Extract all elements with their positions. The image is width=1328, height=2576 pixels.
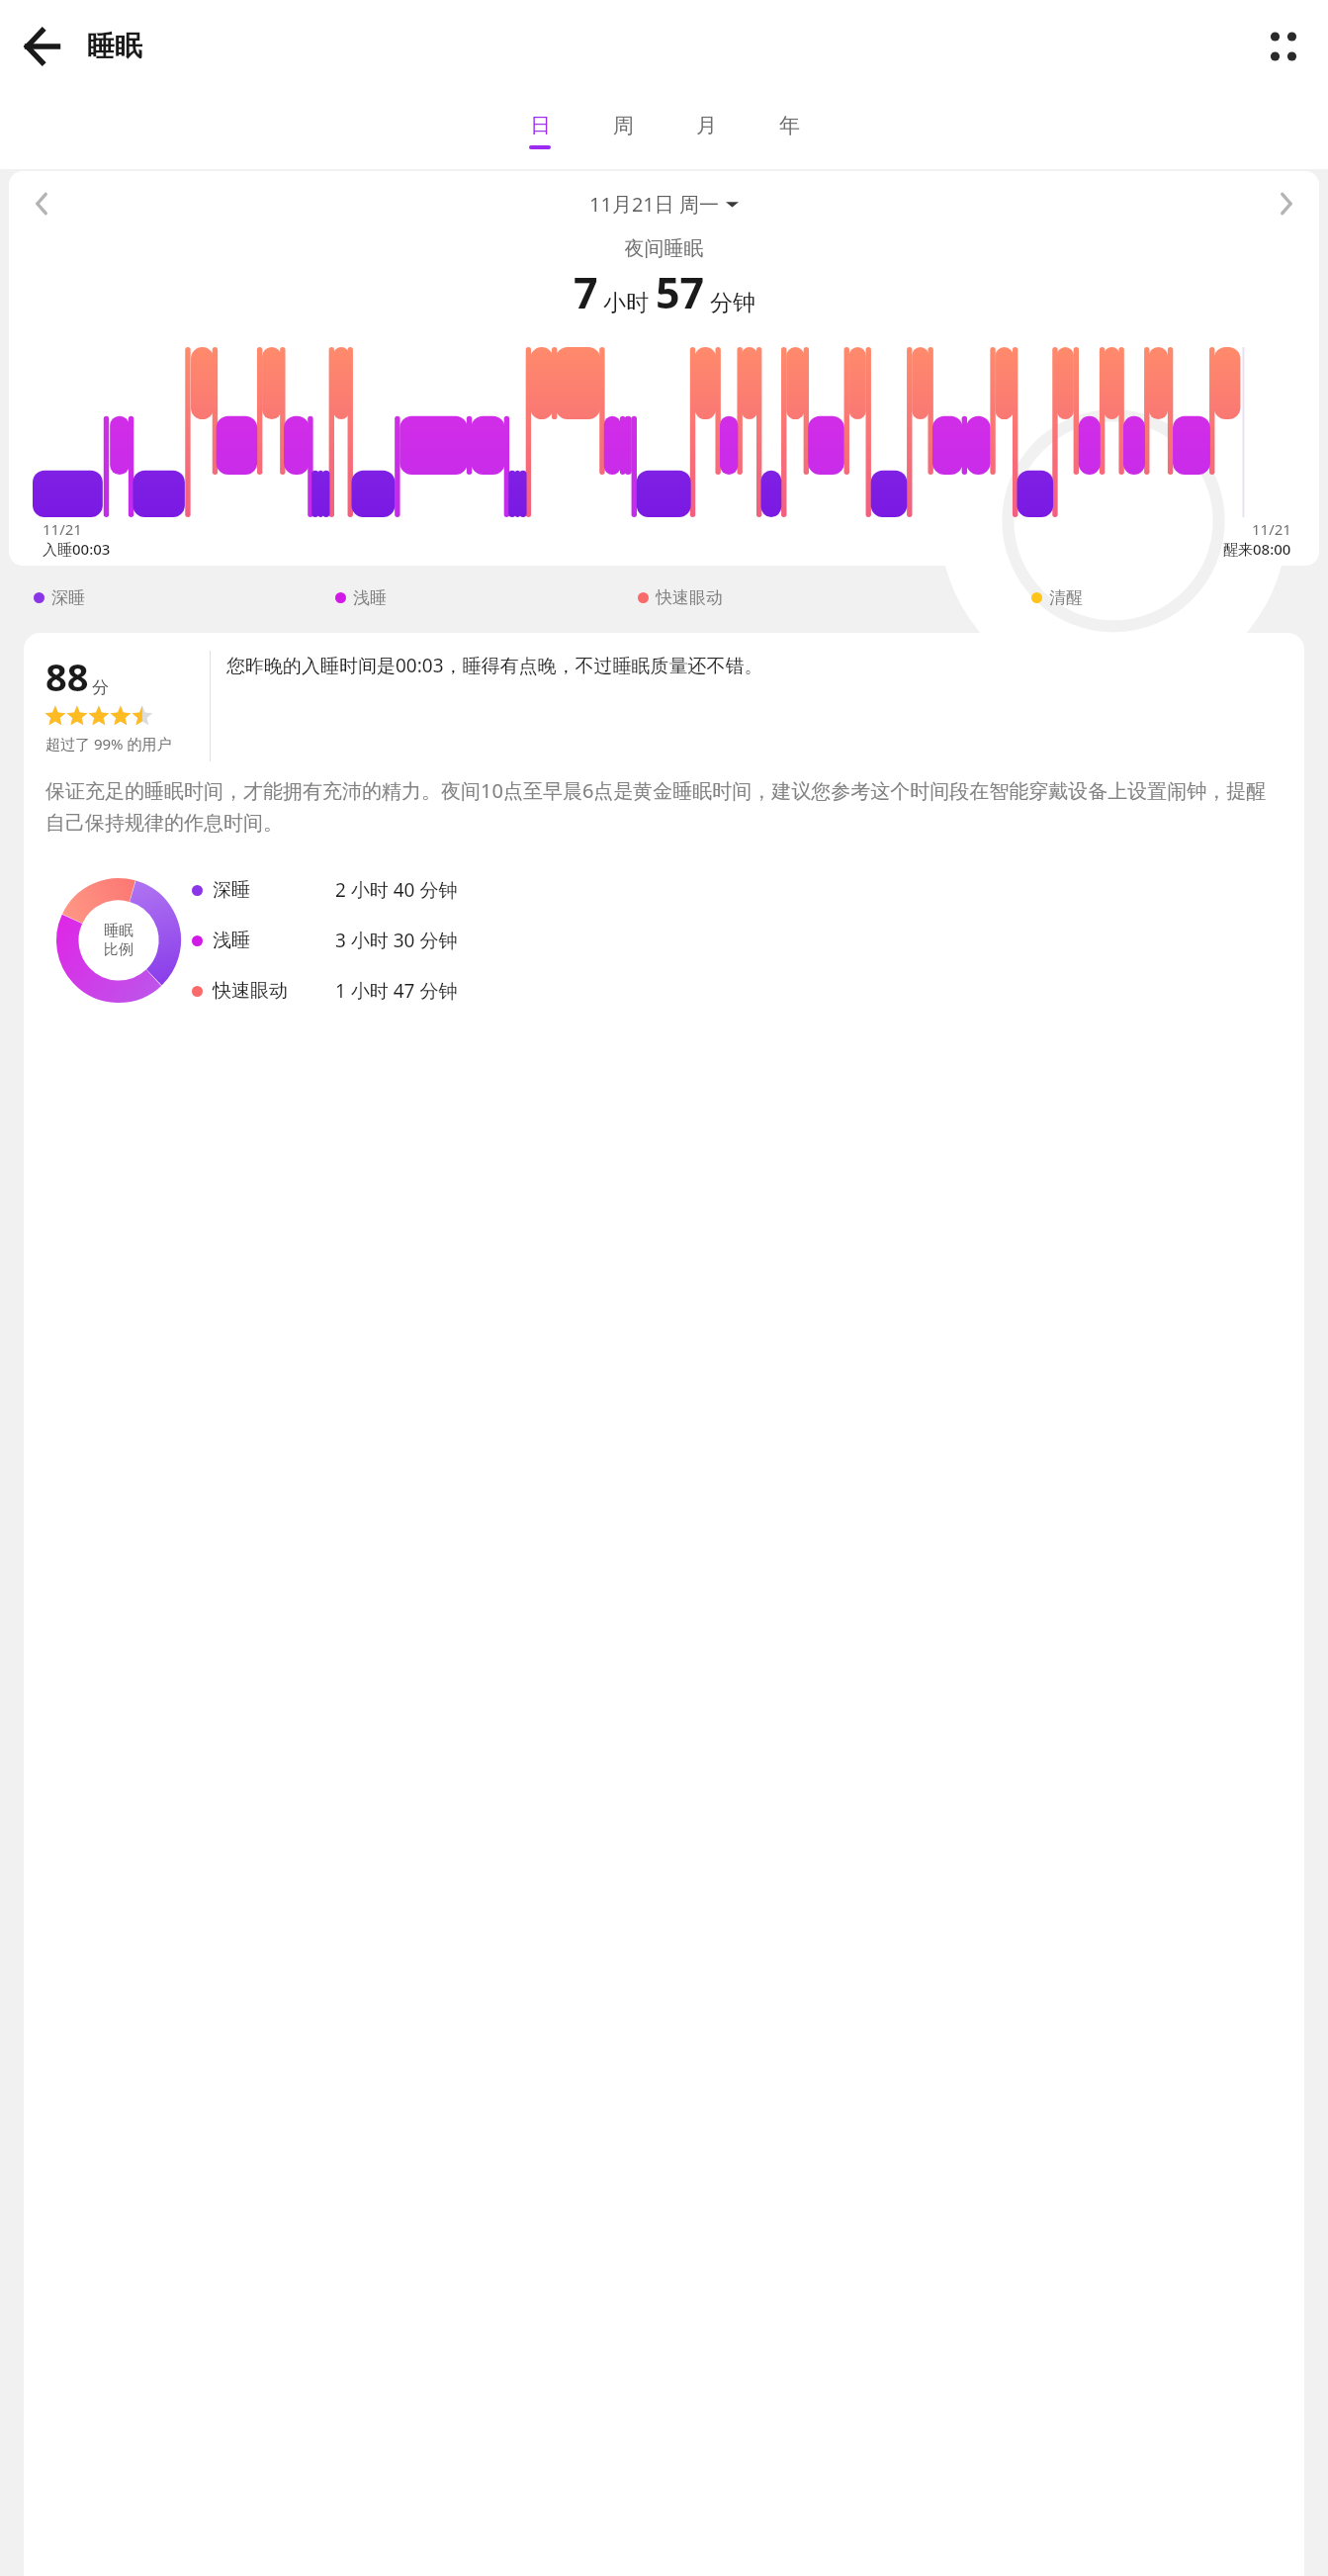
button[interactable]: 月 — [664, 92, 748, 169]
button[interactable]: 快速眼动 — [192, 978, 1283, 1004]
staticText: 睡眠 — [104, 922, 133, 940]
staticText: 周 — [613, 113, 634, 138]
button[interactable]: 浅睡 — [192, 928, 1283, 953]
button[interactable]: 快速眼动 — [638, 587, 1031, 608]
staticText: 7 — [574, 263, 598, 321]
button[interactable]: Previous day — [21, 183, 62, 224]
button[interactable]: 年 — [748, 92, 831, 169]
staticText: 比例 — [104, 940, 133, 959]
staticText: 超过了 99% 的用户 — [45, 734, 172, 754]
staticText: 11月21日 周一 — [589, 191, 719, 218]
staticText: 小时 — [603, 289, 649, 317]
staticText: 年 — [779, 113, 800, 138]
button[interactable]: More options — [1253, 16, 1314, 77]
button[interactable]: 周 — [581, 92, 664, 169]
staticText: 清醒 — [1049, 587, 1083, 608]
staticText: 保证充足的睡眠时间，才能拥有充沛的精力。夜间10点至早晨6点是黄金睡眠时间，建议… — [45, 777, 1283, 836]
staticText: 分钟 — [710, 289, 755, 317]
staticText: 57 — [656, 263, 705, 321]
staticText: 深睡 — [213, 878, 335, 902]
button[interactable]: Next day — [1266, 183, 1307, 224]
button[interactable]: 日 — [498, 92, 581, 169]
staticText: 月 — [696, 113, 717, 138]
staticText: 入睡00:03 — [43, 539, 111, 559]
staticText: 醒来08:00 — [1223, 539, 1291, 559]
staticText: 2 小时 40 分钟 — [335, 877, 458, 903]
staticText: 日 — [530, 113, 551, 138]
staticText: 您昨晚的入睡时间是00:03，睡得有点晚，不过睡眠质量还不错。 — [226, 653, 1283, 678]
button[interactable]: 清醒 — [1031, 587, 1288, 608]
button[interactable]: 深睡 — [192, 877, 1283, 903]
staticText: 1 小时 47 分钟 — [335, 978, 458, 1004]
staticText: 快速眼动 — [656, 587, 723, 608]
staticText: 睡眠 — [87, 29, 142, 63]
button[interactable]: 浅睡 — [335, 587, 638, 608]
staticText: 11/21 — [1252, 519, 1291, 539]
staticText: 3 小时 30 分钟 — [335, 928, 458, 953]
staticText: 浅睡 — [213, 929, 335, 952]
staticText: 快速眼动 — [213, 979, 335, 1003]
button[interactable]: Back — [12, 16, 73, 77]
staticText: 88 — [45, 651, 89, 702]
button[interactable]: 深睡 — [34, 587, 335, 608]
staticText: 11/21 — [43, 519, 82, 539]
staticText: 浅睡 — [353, 587, 387, 608]
staticText: 分 — [92, 677, 109, 698]
staticText: 夜间睡眠 — [9, 236, 1319, 261]
staticText: 深睡 — [51, 587, 85, 608]
